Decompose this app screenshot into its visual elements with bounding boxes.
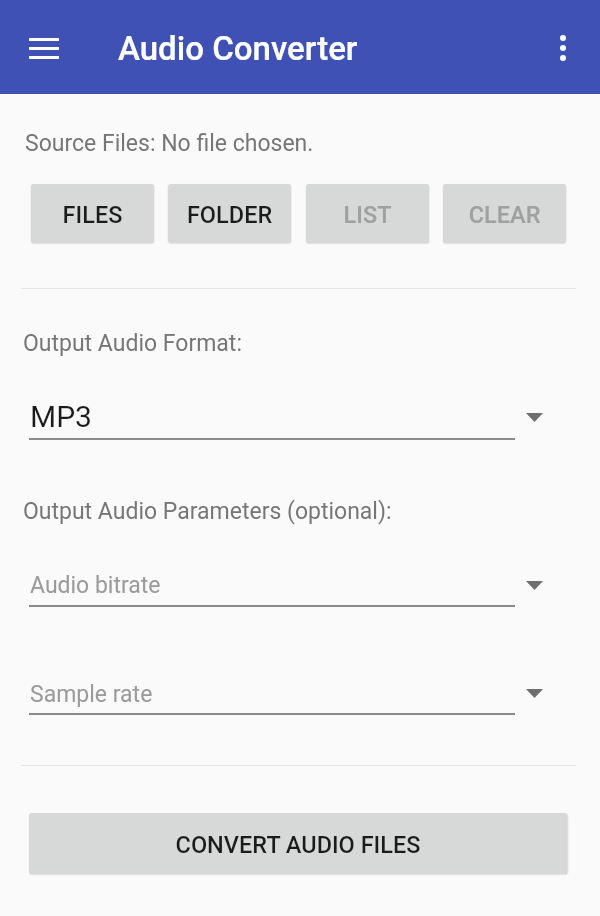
staticText: Audio bitrate [30, 572, 161, 599]
button[interactable]: Sample rate [21, 667, 545, 717]
staticText: CLEAR [443, 201, 566, 229]
button[interactable]: FILES [31, 184, 154, 243]
staticText: FILES [31, 201, 154, 229]
staticText: Audio Converter [118, 29, 358, 68]
button[interactable]: FOLDER [168, 184, 291, 243]
button[interactable]: CLEAR [443, 184, 566, 243]
staticText: CONVERT AUDIO FILES [29, 831, 567, 859]
button[interactable]: LIST [306, 184, 429, 243]
staticText: Output Audio Format: [23, 330, 242, 357]
button[interactable]: More options [539, 24, 587, 72]
button[interactable]: Audio bitrate [21, 559, 545, 609]
staticText: FOLDER [168, 201, 291, 229]
staticText: MP3 [30, 399, 92, 434]
staticText: Source Files: No file chosen. [25, 130, 314, 157]
staticText: Output Audio Parameters (optional): [23, 498, 392, 525]
button[interactable]: CONVERT AUDIO FILES [29, 813, 567, 874]
staticText: LIST [306, 201, 429, 229]
button[interactable]: Open navigation menu [15, 25, 73, 71]
button[interactable]: MP3 [21, 392, 545, 442]
staticText: Sample rate [30, 681, 153, 708]
